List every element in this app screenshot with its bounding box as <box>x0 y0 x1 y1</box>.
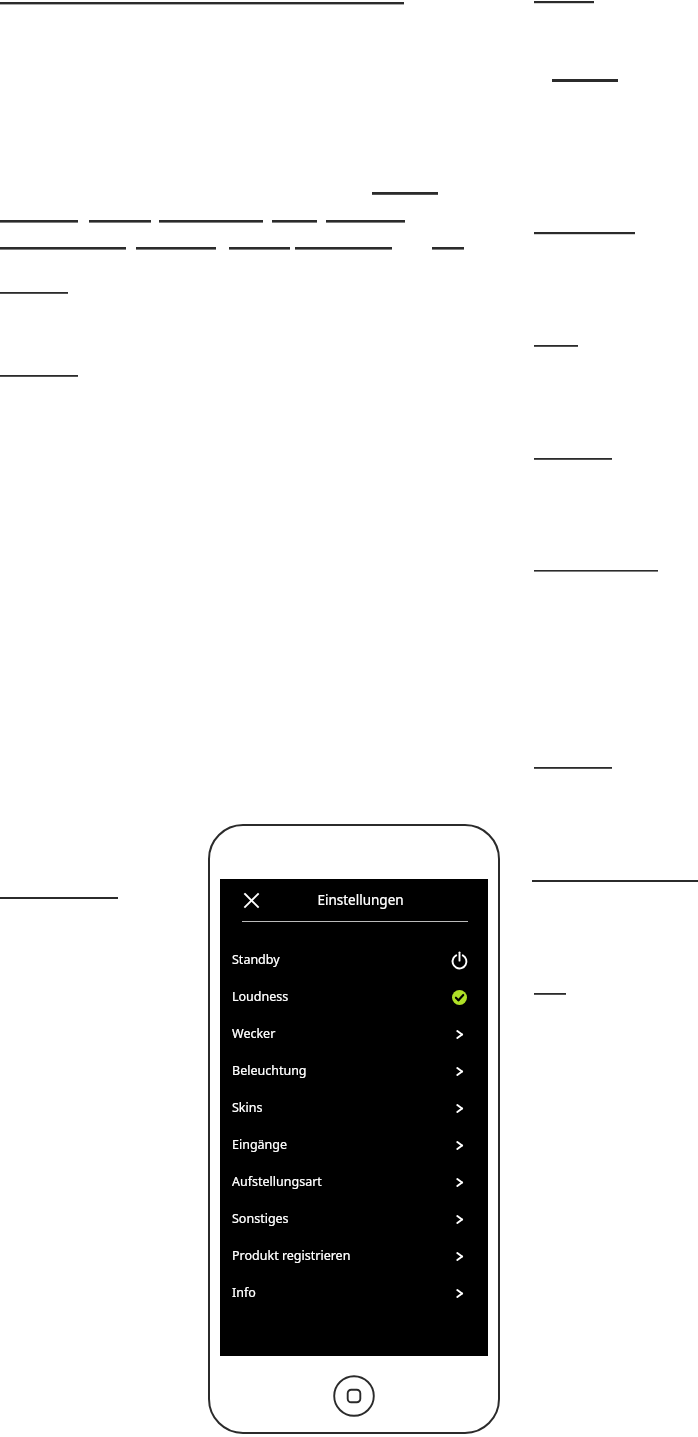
staticText: Skins <box>232 1099 448 1116</box>
button[interactable]: Produkt registrieren <box>220 1237 488 1274</box>
button[interactable]: Home <box>333 1375 375 1417</box>
button[interactable]: Loudness <box>220 978 488 1015</box>
button[interactable]: Beleuchtung <box>220 1052 488 1089</box>
button[interactable]: Sonstiges <box>220 1200 488 1237</box>
staticText: Loudness <box>232 988 448 1005</box>
staticText: Standby <box>232 951 448 968</box>
staticText: Sonstiges <box>232 1210 448 1227</box>
button[interactable]: Wecker <box>220 1015 488 1052</box>
button[interactable]: Standby <box>220 941 488 978</box>
button[interactable]: Close <box>238 887 264 913</box>
button[interactable]: Aufstellungsart <box>220 1163 488 1200</box>
staticText: Eingänge <box>232 1136 448 1153</box>
button[interactable]: Info <box>220 1274 488 1311</box>
staticText: Beleuchtung <box>232 1062 448 1079</box>
staticText: Einstellungen <box>317 891 404 909</box>
staticText: Aufstellungsart <box>232 1173 448 1190</box>
button[interactable]: Skins <box>220 1089 488 1126</box>
staticText: Info <box>232 1284 448 1301</box>
button[interactable]: Eingänge <box>220 1126 488 1163</box>
staticText: Produkt registrieren <box>232 1247 448 1264</box>
staticText: Wecker <box>232 1025 448 1042</box>
